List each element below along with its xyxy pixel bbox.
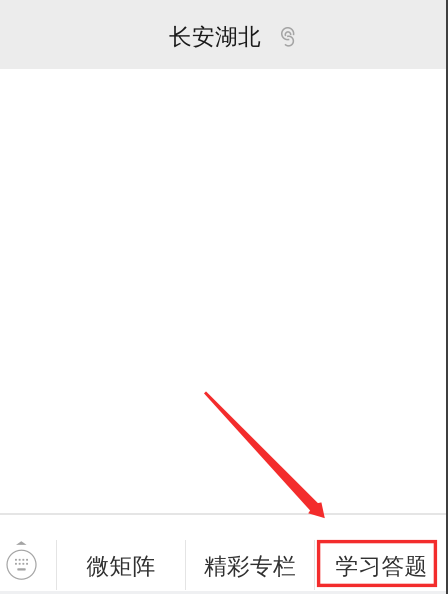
button[interactable]: 微矩阵 [57,515,185,591]
staticText: 微矩阵 [86,553,155,580]
staticText: 学习答题 [335,553,427,580]
button[interactable]: Keyboard [0,515,56,591]
button[interactable]: 学习答题 [315,515,448,591]
button[interactable]: 精彩专栏 [186,515,314,591]
staticText: 长安湖北 [169,23,261,51]
staticText: 精彩专栏 [204,553,296,580]
